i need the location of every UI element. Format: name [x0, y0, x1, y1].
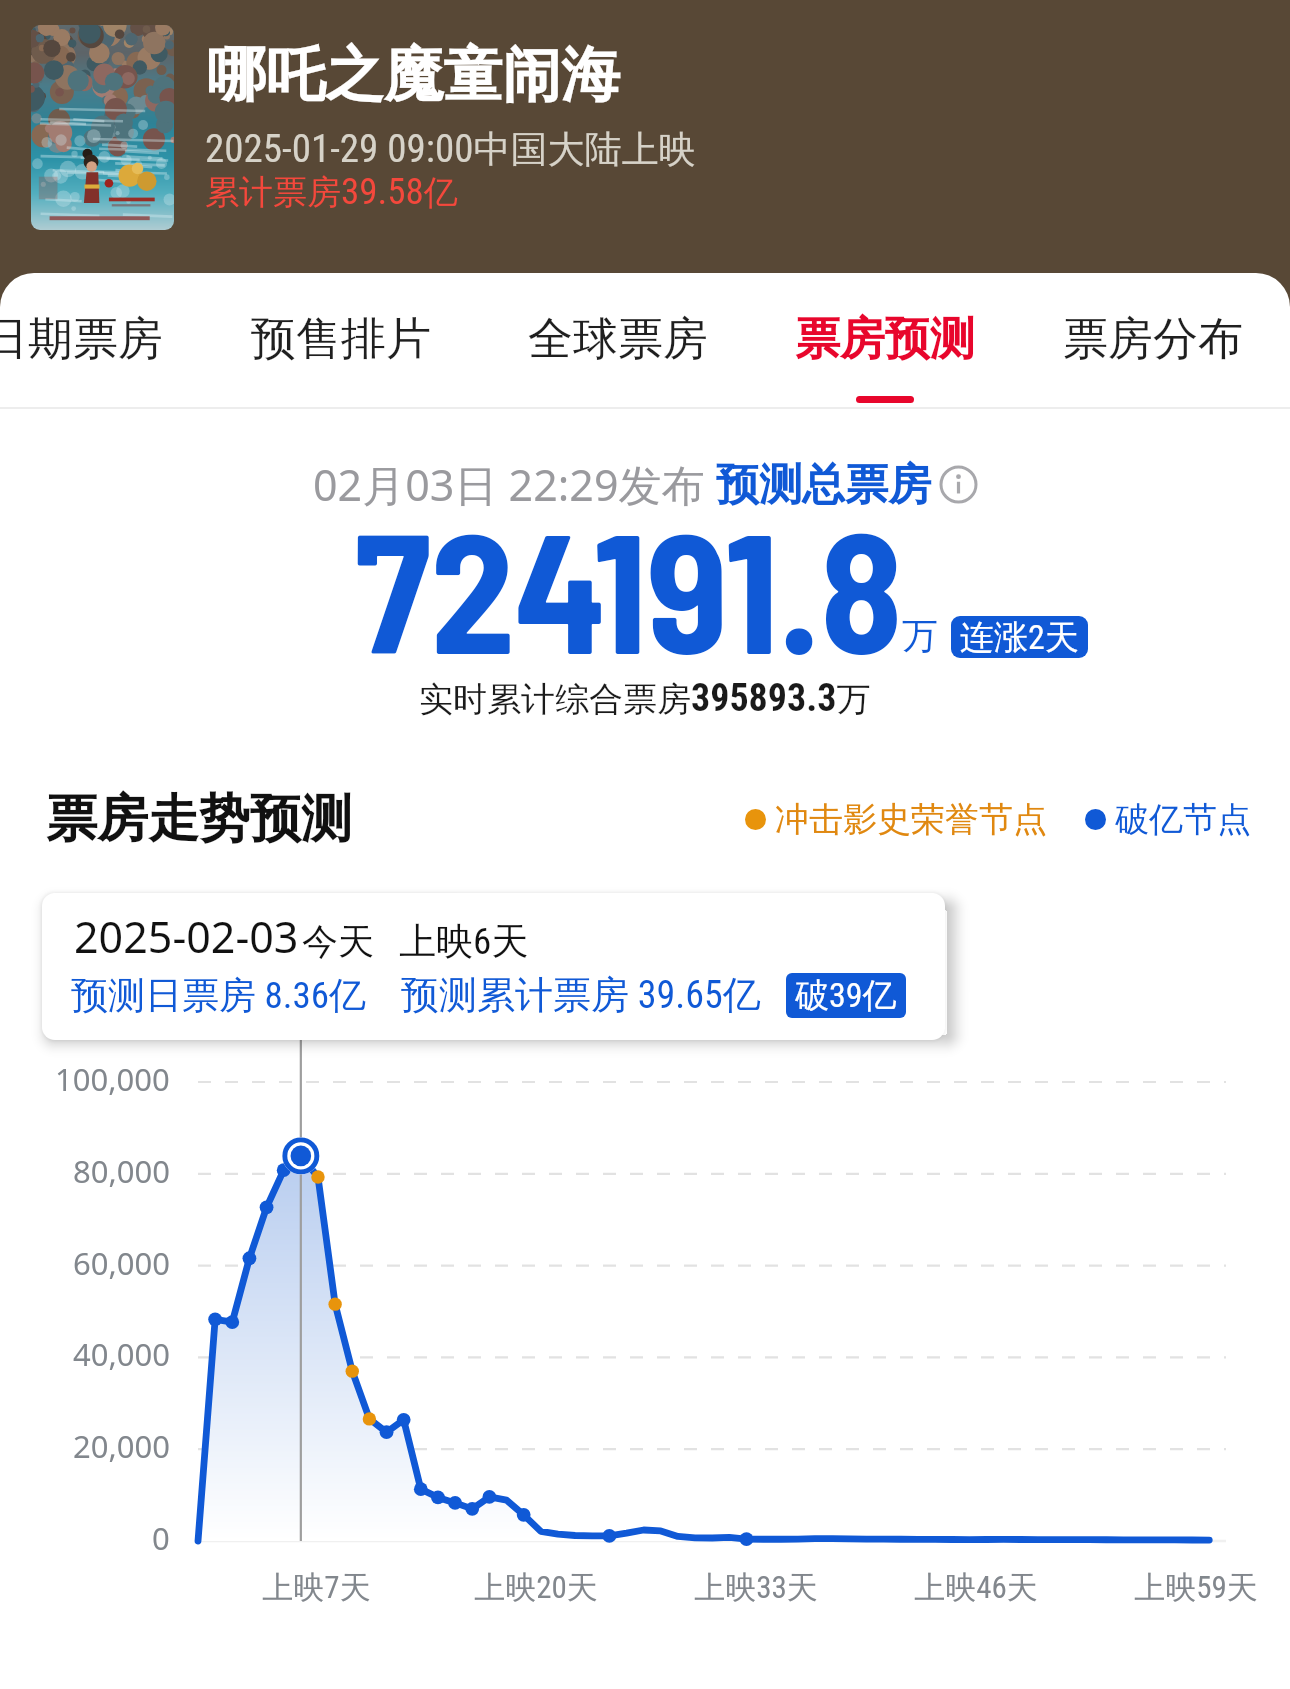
button[interactable]: 全球票房: [508, 278, 728, 403]
staticText: 60,000: [73, 1242, 170, 1284]
staticText: 40,000: [73, 1333, 170, 1375]
staticText: 2025-02-03: [74, 907, 299, 966]
staticText: 100,000: [55, 1058, 170, 1100]
staticText: 上映20天: [474, 1568, 598, 1607]
button[interactable]: 2025-02-03: [42, 893, 945, 1040]
staticText: 全球票房: [528, 311, 708, 368]
button[interactable]: 票房分布: [1043, 278, 1263, 403]
staticText: 724191.8: [355, 486, 903, 688]
staticText: 票房走势预测: [46, 787, 352, 851]
staticText: 今天: [302, 919, 374, 964]
staticText: 02月03日 22:29发布: [313, 455, 716, 514]
staticText: 上映7天: [262, 1568, 371, 1607]
staticText: 实时累计综合票房395893.3万: [419, 676, 871, 721]
button[interactable]: 连涨2天: [951, 616, 1088, 658]
staticText: 预测日票房 8.36亿: [71, 972, 367, 1019]
button[interactable]: 预售排片: [231, 278, 451, 403]
button[interactable]: 预测总票房: [716, 458, 931, 512]
staticText: 上映59天: [1134, 1568, 1258, 1607]
staticText: 破39亿: [795, 974, 897, 1017]
staticText: 破亿节点: [1115, 798, 1251, 841]
staticText: 日期票房: [0, 311, 163, 368]
button[interactable]: 票房预测: [775, 278, 995, 403]
staticText: 票房分布: [1063, 311, 1243, 368]
other: 说明: [939, 465, 978, 504]
staticText: 冲击影史荣誉节点: [775, 798, 1047, 841]
staticText: 预测累计票房 39.65亿: [401, 971, 761, 1019]
staticText: 连涨2天: [960, 616, 1079, 658]
staticText: 预测总票房: [716, 458, 931, 512]
staticText: 哪吒之魔童闹海: [207, 38, 620, 112]
button[interactable]: 冲击影史荣誉节点: [745, 798, 1251, 841]
staticText: 0: [152, 1517, 170, 1559]
staticText: 万: [902, 613, 938, 658]
staticText: 20,000: [73, 1425, 170, 1467]
staticText: 上映46天: [914, 1568, 1038, 1607]
staticText: 上映6天: [399, 918, 529, 965]
staticText: 预售排片: [251, 311, 431, 368]
staticText: 上映33天: [694, 1568, 818, 1607]
staticText: 累计票房39.58亿: [205, 170, 458, 214]
button[interactable]: 日期票房: [0, 278, 183, 403]
staticText: 80,000: [73, 1150, 170, 1192]
staticText: 2025-01-29 09:00中国大陆上映: [205, 126, 696, 173]
staticText: 票房预测: [795, 311, 975, 368]
button[interactable]: 哪吒之魔童闹海 海报: [31, 25, 174, 230]
